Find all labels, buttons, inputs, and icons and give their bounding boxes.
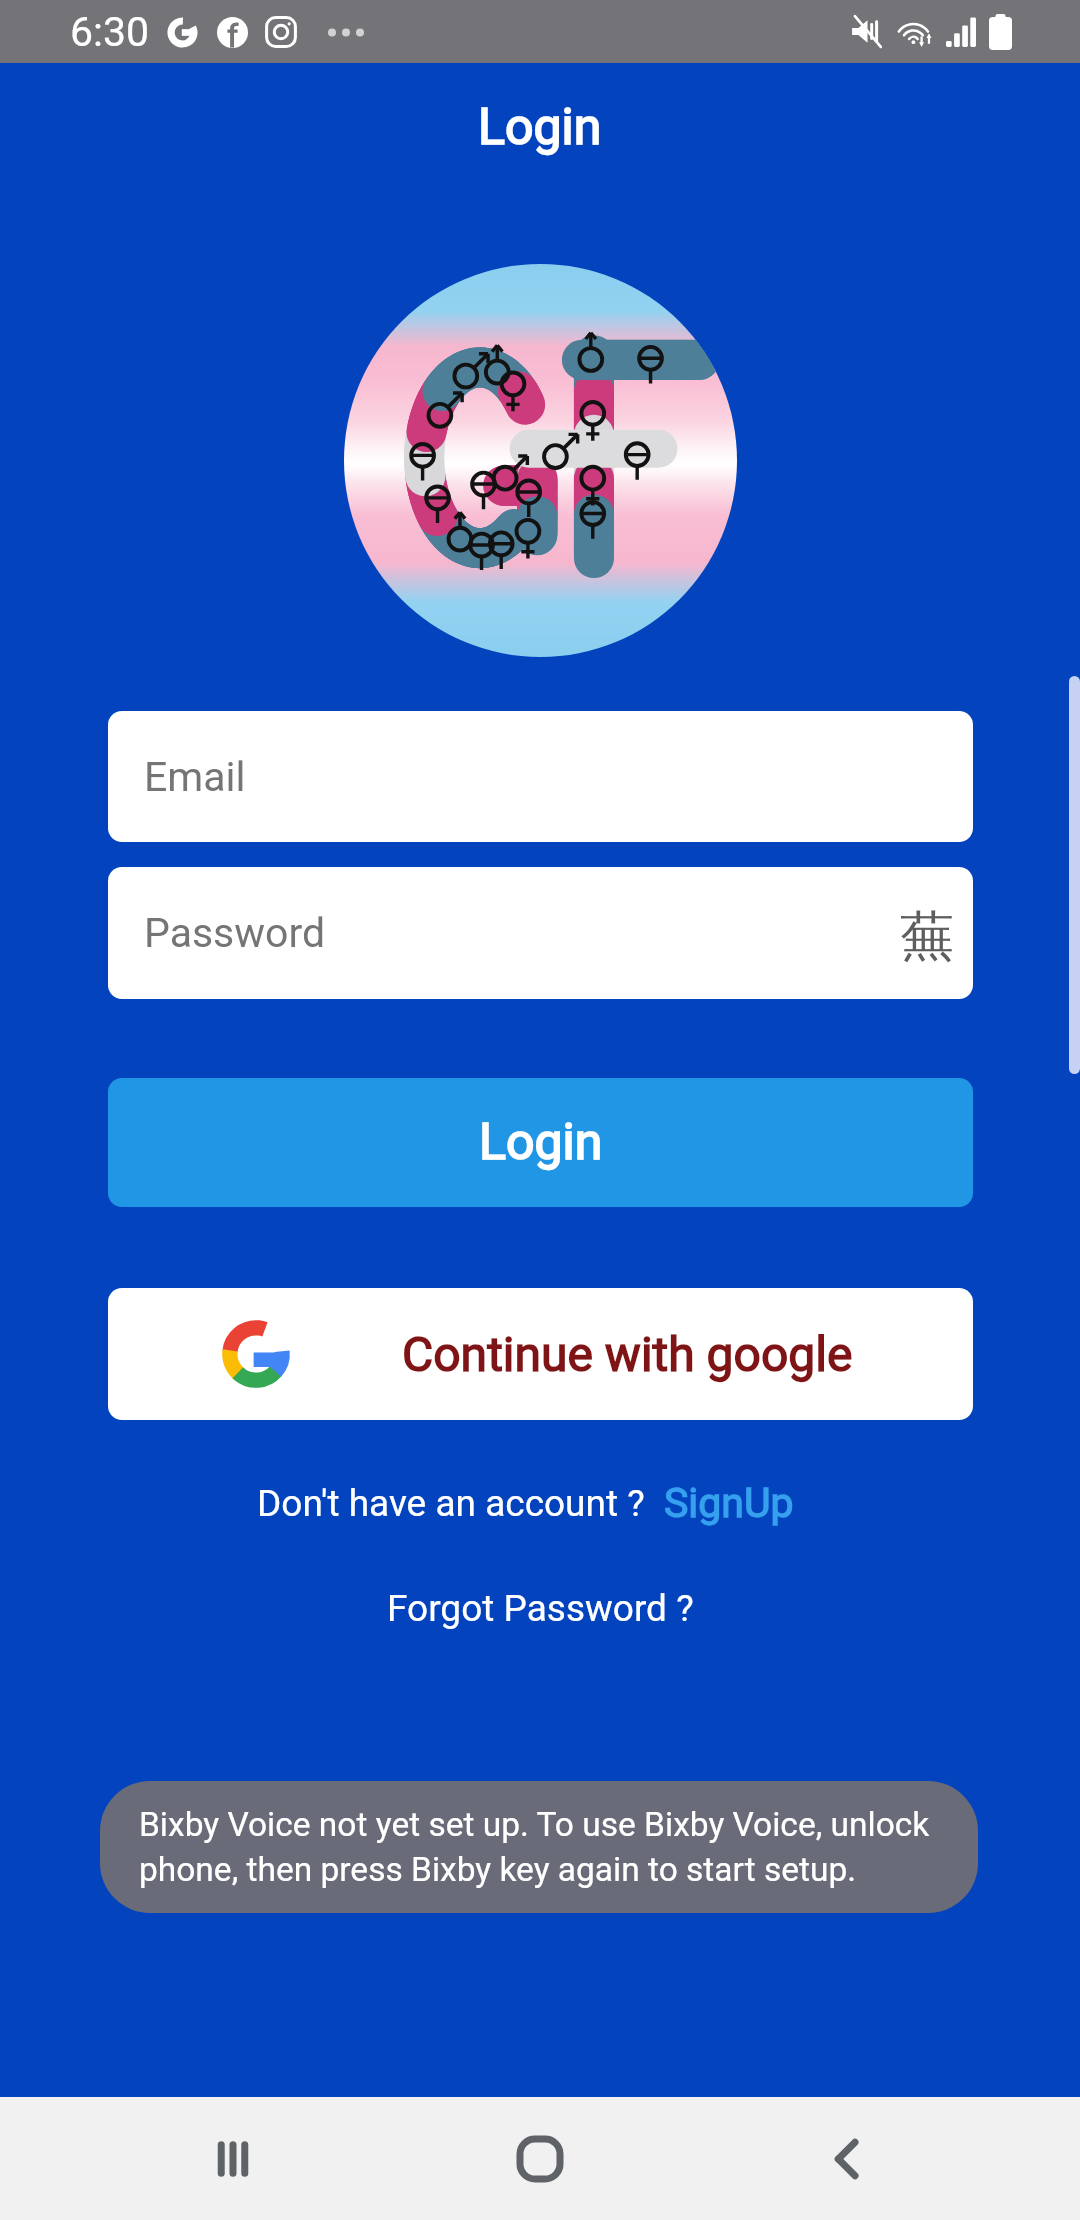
- button[interactable]: Password: [108, 867, 973, 999]
- staticText: 6:30: [70, 8, 150, 56]
- button[interactable]: Continue with google: [108, 1288, 973, 1420]
- staticText: Don't have an account ?: [257, 1482, 645, 1525]
- staticText: Login: [478, 98, 602, 157]
- button[interactable]: Back: [773, 2097, 923, 2220]
- button[interactable]: Forgot Password ?: [387, 1587, 694, 1630]
- button[interactable]: Recent apps: [158, 2097, 308, 2220]
- staticText: Email: [144, 753, 246, 801]
- staticText: Login: [479, 1113, 603, 1172]
- staticText: 蕪: [900, 903, 954, 963]
- button[interactable]: Home: [465, 2097, 615, 2220]
- staticText: f: [227, 17, 239, 48]
- staticText: Forgot Password ?: [387, 1587, 694, 1630]
- staticText: SignUp: [664, 1479, 794, 1527]
- staticText: Continue with google: [402, 1326, 853, 1382]
- button[interactable]: Show password: [897, 903, 957, 963]
- staticText: Bixby Voice not yet set up. To use Bixby…: [139, 1805, 930, 1889]
- staticText: Password: [144, 909, 326, 957]
- button[interactable]: SignUp: [664, 1479, 794, 1527]
- button[interactable]: Email: [108, 711, 973, 842]
- button[interactable]: Login: [108, 1078, 973, 1207]
